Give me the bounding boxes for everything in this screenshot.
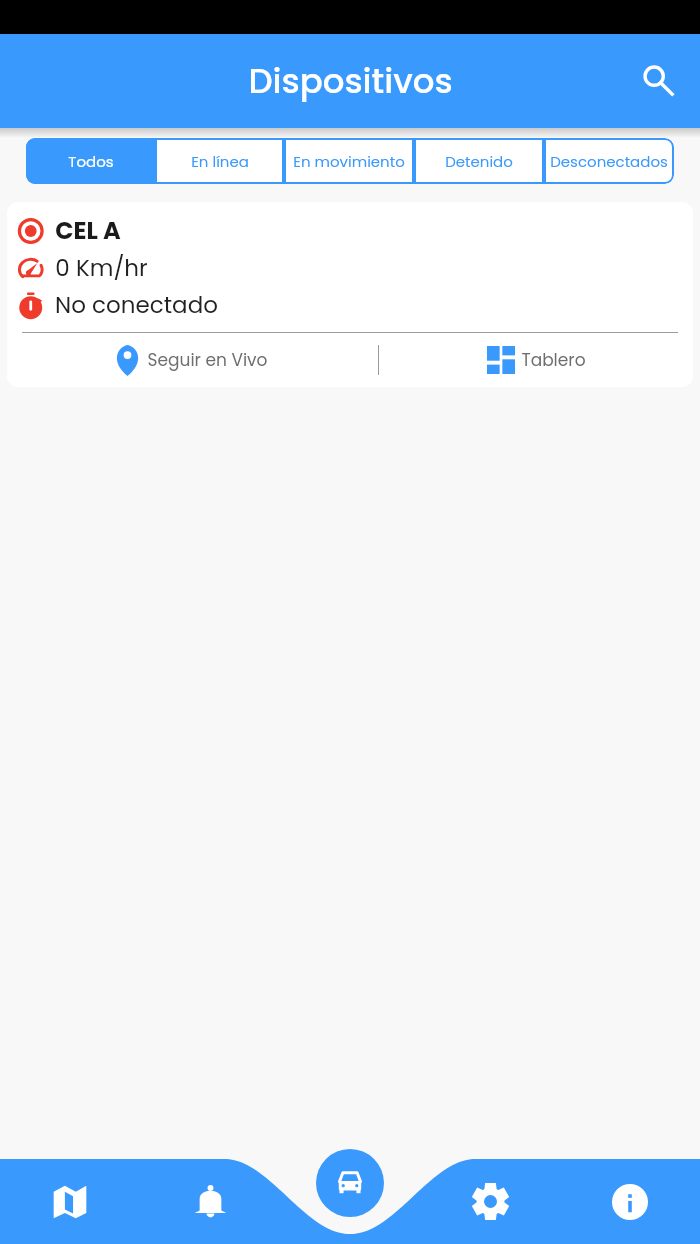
- staticText: No conectado: [55, 289, 218, 321]
- button[interactable]: Tablero: [379, 333, 693, 387]
- staticText: CEL A: [55, 214, 121, 248]
- button[interactable]: Search: [630, 53, 686, 109]
- button[interactable]: Seguir en Vivo: [7, 333, 378, 387]
- button[interactable]: Settings: [420, 1159, 560, 1244]
- button[interactable]: Notifications: [140, 1159, 280, 1244]
- staticText: Desconectados: [550, 151, 668, 172]
- staticText: En movimiento: [293, 151, 405, 172]
- staticText: Detenido: [445, 151, 513, 172]
- button[interactable]: Detenido: [414, 138, 544, 184]
- staticText: Dispositivos: [248, 57, 453, 105]
- button[interactable]: Information: [560, 1159, 700, 1244]
- staticText: Tablero: [521, 348, 586, 372]
- button[interactable]: CEL A: [7, 202, 693, 387]
- staticText: 0 Km/hr: [55, 252, 148, 284]
- button[interactable]: Vehicles: [316, 1149, 384, 1217]
- button[interactable]: En movimiento: [284, 138, 414, 184]
- button[interactable]: Map: [0, 1159, 140, 1244]
- staticText: Todos: [68, 151, 114, 172]
- staticText: En línea: [191, 151, 249, 172]
- button[interactable]: Todos: [26, 138, 155, 184]
- button[interactable]: Desconectados: [544, 138, 674, 184]
- button[interactable]: En línea: [155, 138, 284, 184]
- staticText: Seguir en Vivo: [147, 348, 268, 372]
